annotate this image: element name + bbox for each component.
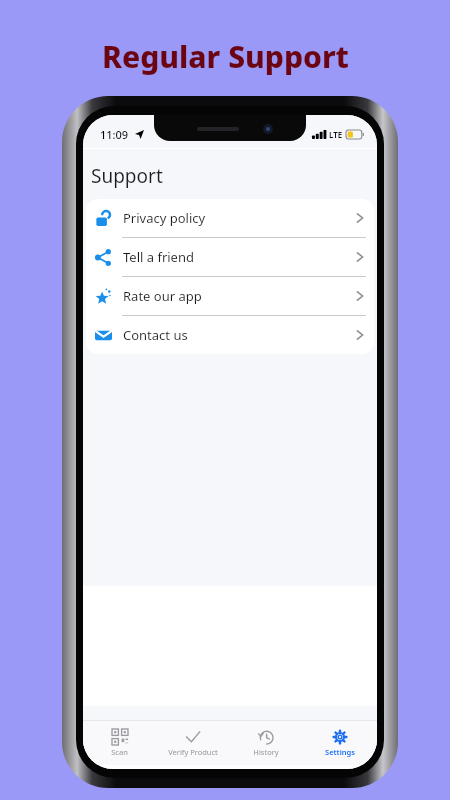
button[interactable]: Tell a friend [86, 238, 374, 276]
staticText: LTE [329, 129, 343, 140]
staticText: Scan [111, 747, 128, 757]
button[interactable]: Rate our app [86, 277, 374, 315]
staticText: Regular Support [102, 36, 349, 77]
staticText: 11:09 [100, 127, 129, 142]
button[interactable]: Scan [83, 721, 156, 765]
staticText: Settings [325, 747, 355, 757]
staticText: Contact us [123, 326, 188, 344]
staticText: Verify Product [168, 747, 218, 757]
button[interactable]: Privacy policy [86, 199, 374, 237]
button[interactable]: Settings [303, 721, 377, 765]
staticText: Support [91, 163, 163, 189]
staticText: History [253, 747, 279, 757]
staticText: Rate our app [123, 287, 202, 305]
button[interactable]: History [229, 721, 303, 765]
button[interactable]: Contact us [86, 316, 374, 354]
staticText: Privacy policy [123, 209, 206, 227]
staticText: Tell a friend [123, 248, 194, 266]
button[interactable]: Verify Product [156, 721, 229, 765]
